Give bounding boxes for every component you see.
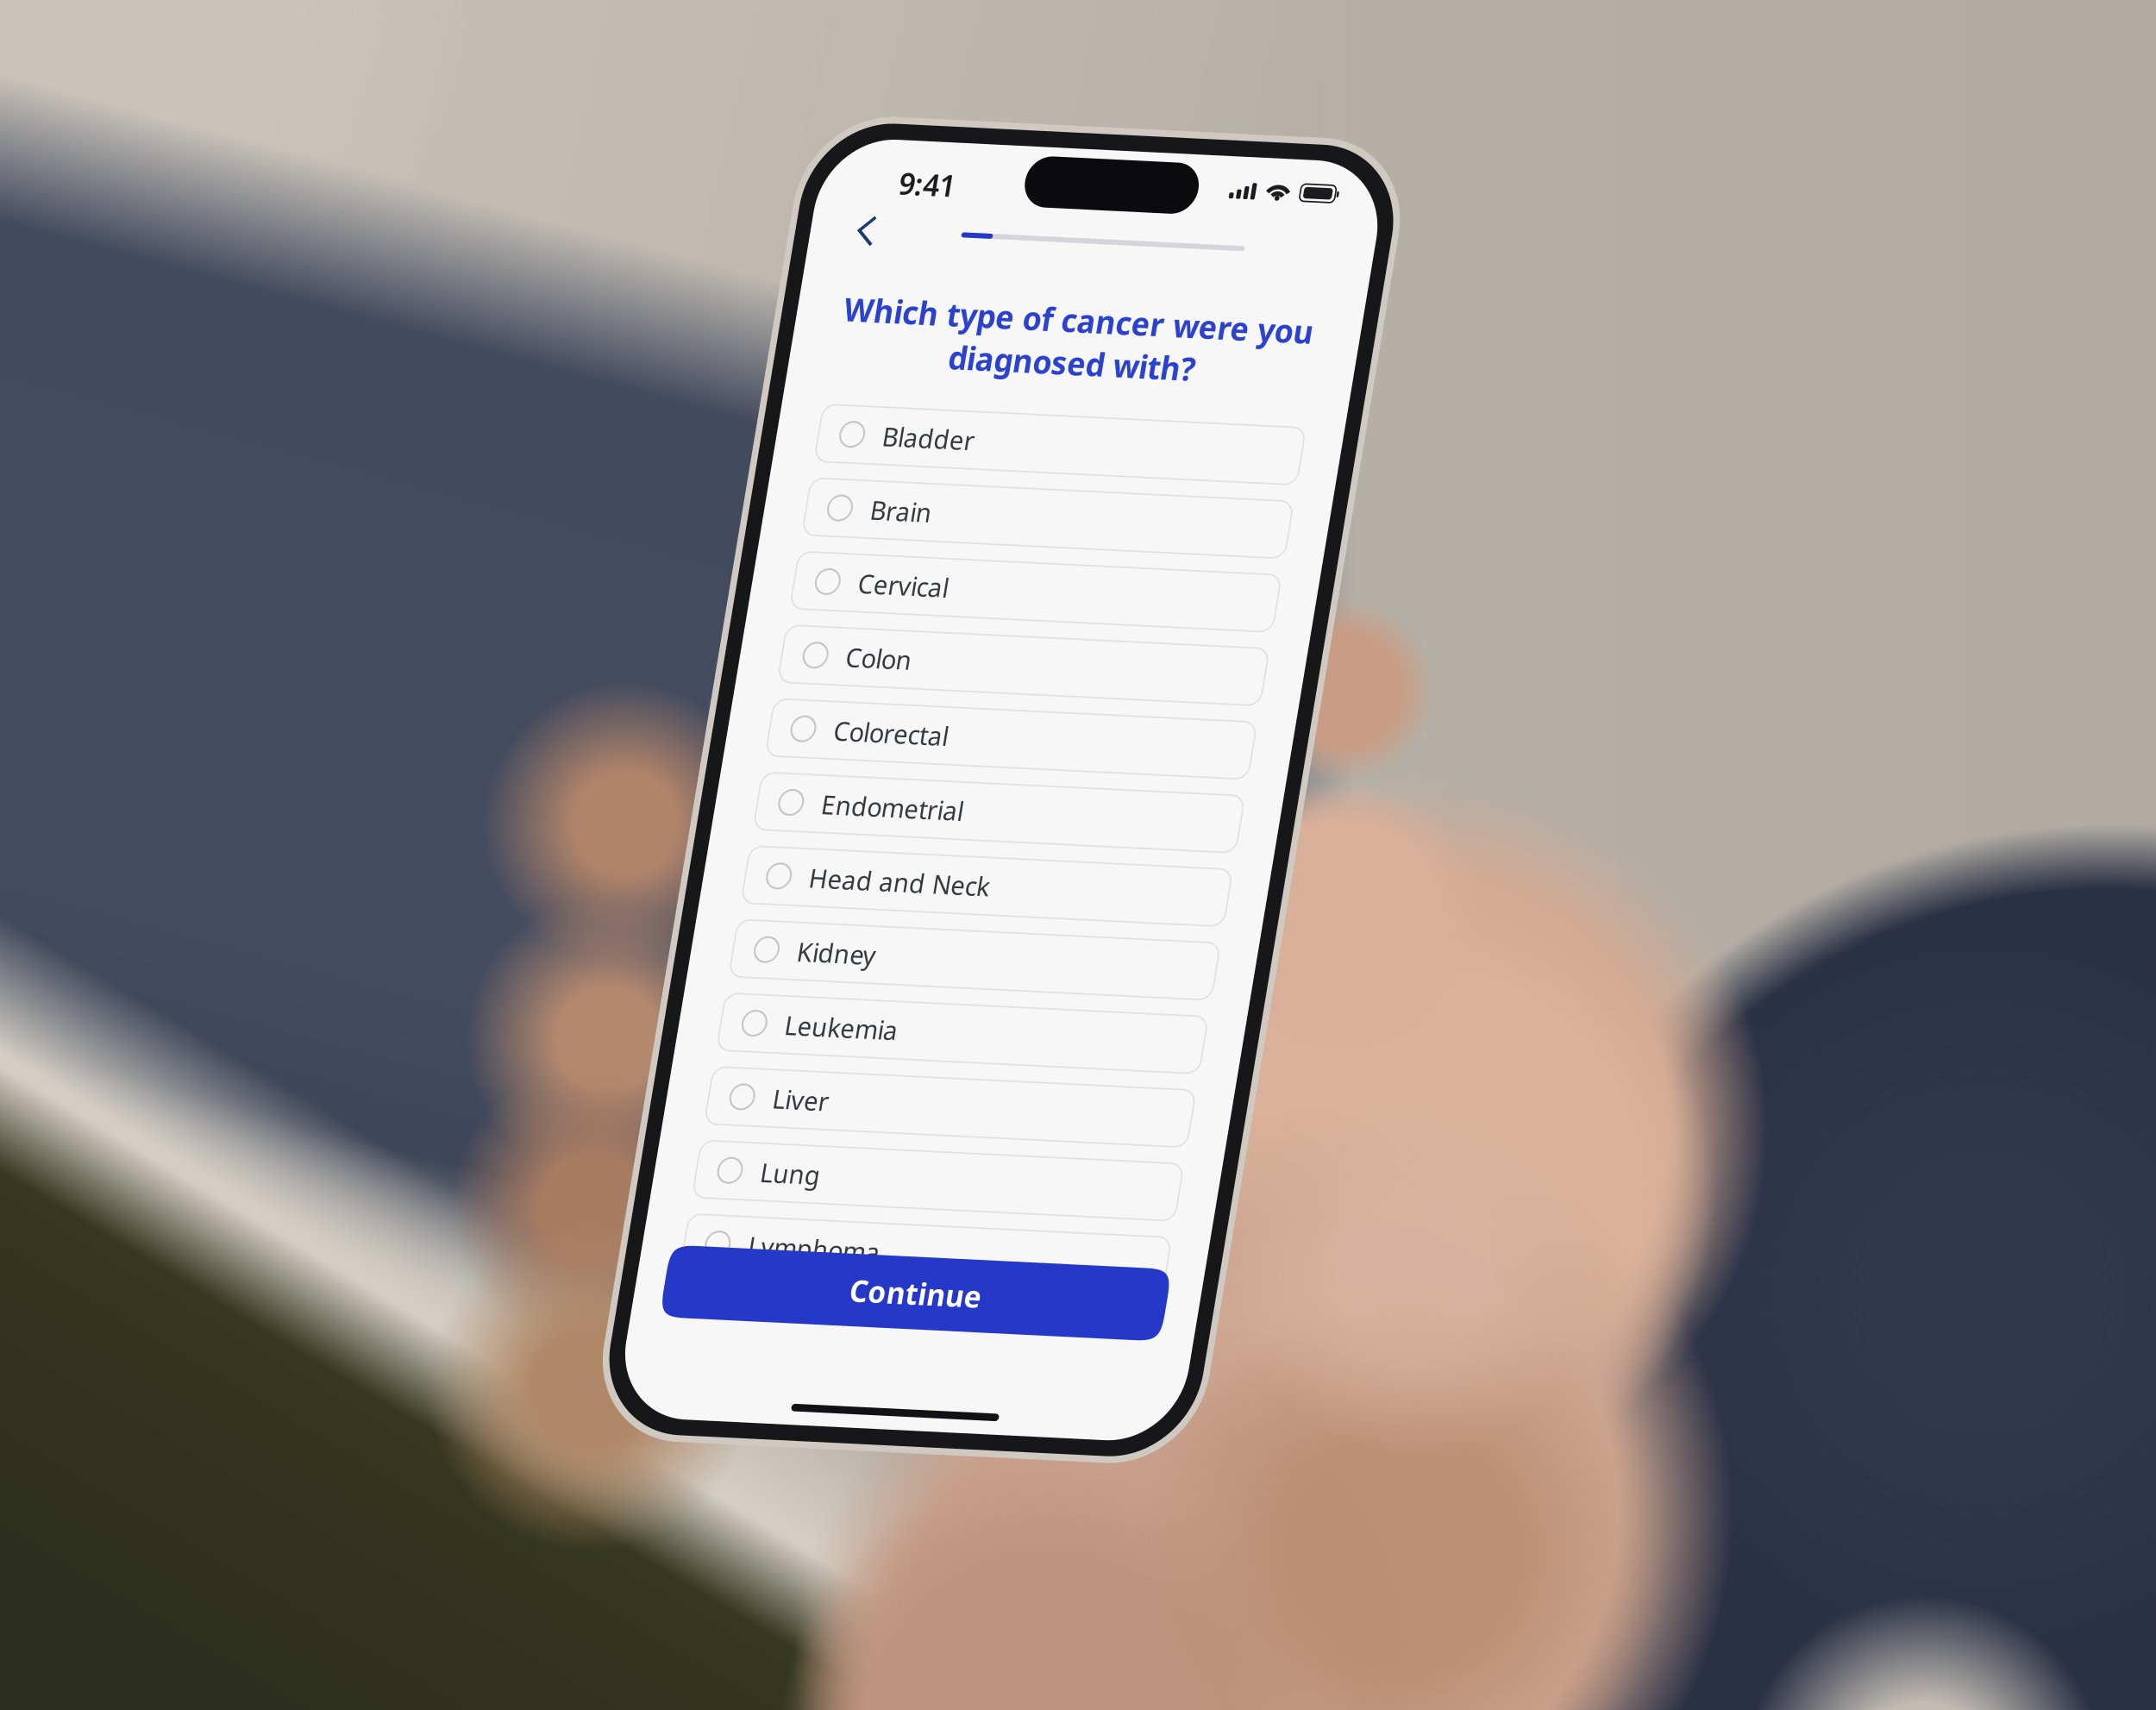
staticText: Which type of cancer were you diagnosed … (854, 222, 1137, 271)
staticText: Kidney (890, 591, 937, 611)
button[interactable]: Lymphoma (851, 754, 1142, 786)
button[interactable]: Leukemia (851, 627, 1142, 660)
staticText: Endometrial (890, 507, 975, 526)
button[interactable]: Colon (851, 416, 1142, 448)
staticText: Lymphoma (890, 760, 969, 780)
button[interactable]: Endometrial (851, 500, 1142, 533)
button[interactable]: Cervical (851, 373, 1142, 406)
button[interactable]: Head and Neck (851, 542, 1142, 575)
button[interactable]: Continue (843, 772, 1145, 813)
staticText: Bladder (890, 295, 945, 315)
button[interactable]: Brain (851, 331, 1142, 364)
button[interactable]: Liver (851, 669, 1142, 702)
button[interactable]: Colorectal (851, 458, 1142, 491)
staticText: Colon (890, 422, 929, 442)
staticText: Liver (890, 676, 923, 695)
button[interactable]: Bladder (851, 289, 1142, 322)
staticText: Lung (890, 718, 926, 738)
staticText: Head and Neck (890, 549, 998, 569)
button[interactable]: Kidney (851, 585, 1142, 617)
staticText: Colorectal (890, 464, 959, 484)
staticText: Continue (955, 781, 1034, 804)
button[interactable]: Lung (851, 711, 1142, 744)
